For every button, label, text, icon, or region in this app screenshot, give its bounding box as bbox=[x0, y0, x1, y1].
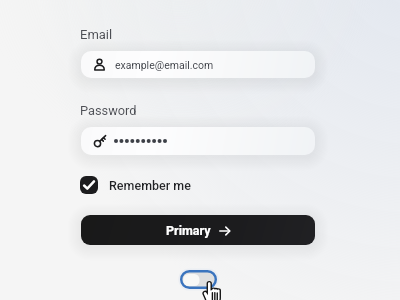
staticText: Email bbox=[80, 27, 113, 42]
button[interactable]: example@email.com bbox=[81, 51, 315, 78]
button[interactable]: Toggle switch bbox=[180, 270, 217, 289]
staticText: Password bbox=[80, 103, 137, 118]
button[interactable]: Primary bbox=[81, 215, 315, 245]
staticText: example@email.com bbox=[115, 59, 214, 71]
button[interactable]: Remember me bbox=[80, 176, 191, 194]
staticText: Remember me bbox=[109, 178, 191, 193]
staticText: Primary bbox=[166, 223, 211, 238]
button[interactable] bbox=[81, 127, 315, 155]
